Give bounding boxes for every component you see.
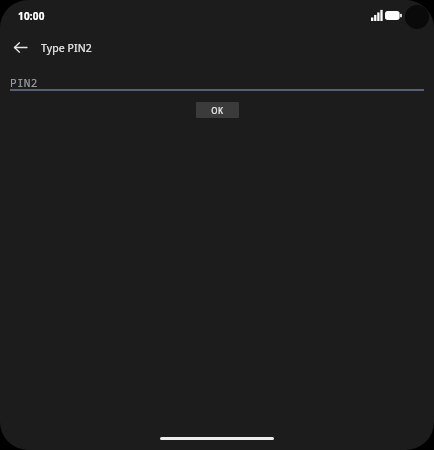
staticText: OK [211, 105, 224, 116]
button[interactable]: PIN2 [0, 70, 434, 92]
staticText: 10:00 [18, 9, 45, 23]
staticText: Type PIN2 [41, 41, 92, 55]
button[interactable]: Back [8, 35, 32, 59]
staticText: PIN2 [10, 75, 38, 90]
button[interactable]: OK [196, 102, 239, 118]
